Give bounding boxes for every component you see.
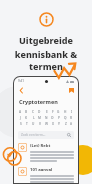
- staticText: F: [52, 110, 54, 114]
- staticText: K: [25, 116, 28, 120]
- staticText: G: [57, 110, 60, 114]
- staticText: X: [52, 122, 54, 126]
- button[interactable]: M: [37, 115, 42, 120]
- staticText: P: [58, 116, 60, 120]
- staticText: Cryptotermen: [19, 98, 58, 105]
- button[interactable]: #: [69, 121, 74, 126]
- button[interactable]: Q: [63, 115, 68, 120]
- button[interactable]: R: [69, 115, 74, 120]
- staticText: Z: [65, 122, 67, 126]
- button[interactable]: N: [44, 115, 49, 120]
- staticText: #: [70, 122, 73, 126]
- button[interactable]: X: [50, 121, 55, 126]
- button[interactable]: Back: [17, 86, 25, 94]
- staticText: M: [38, 116, 41, 120]
- staticText: J: [20, 116, 21, 120]
- staticText: Uitgebreide: [19, 34, 73, 46]
- staticText: S: [20, 122, 22, 126]
- button[interactable]: Bookmarks: [67, 86, 75, 94]
- staticText: kennisbank & termen: [0, 48, 92, 72]
- staticText: N: [45, 116, 48, 120]
- staticText: H: [64, 110, 67, 114]
- staticText: L: [33, 116, 35, 120]
- button[interactable]: P: [56, 115, 61, 120]
- staticText: D: [38, 110, 41, 114]
- staticText: W: [45, 122, 48, 126]
- button[interactable]: S: [18, 121, 23, 126]
- staticText: O: [51, 116, 54, 120]
- button[interactable]: W: [44, 121, 49, 126]
- button[interactable]: J: [18, 115, 23, 120]
- staticText: (Let) Rekt: [30, 143, 51, 149]
- button[interactable]: (Let) Rekt: [14, 143, 78, 163]
- staticText: B: [25, 110, 28, 114]
- staticText: V: [39, 122, 41, 126]
- staticText: U: [32, 122, 35, 126]
- button[interactable]: V: [37, 121, 42, 126]
- button[interactable]: I: [69, 109, 74, 114]
- button[interactable]: U: [31, 121, 36, 126]
- button[interactable]: K: [24, 115, 29, 120]
- staticText: A: [19, 110, 22, 114]
- button[interactable]: T: [24, 121, 29, 126]
- button[interactable]: C: [31, 109, 36, 114]
- button[interactable]: E: [44, 109, 49, 114]
- button[interactable]: Y: [56, 121, 61, 126]
- staticText: 101 aanval: [30, 167, 53, 173]
- button[interactable]: B: [24, 109, 29, 114]
- staticText: 9:41: [18, 79, 24, 83]
- staticText: T: [26, 122, 28, 126]
- staticText: I: [71, 110, 73, 114]
- staticText: Zoek een term...: [21, 133, 46, 137]
- button[interactable]: O: [50, 115, 55, 120]
- staticText: R: [70, 116, 73, 120]
- button[interactable]: H: [63, 109, 68, 114]
- button[interactable]: A: [18, 109, 23, 114]
- staticText: Y: [58, 122, 60, 126]
- button[interactable]: G: [56, 109, 61, 114]
- other: Information: [39, 12, 54, 27]
- button[interactable]: D: [37, 109, 42, 114]
- button[interactable]: F: [50, 109, 55, 114]
- button[interactable]: Z: [63, 121, 68, 126]
- button[interactable]: 101 aanval: [14, 167, 78, 183]
- staticText: C: [32, 110, 35, 114]
- button[interactable]: L: [31, 115, 36, 120]
- button[interactable]: Zoek een term...: [18, 131, 74, 139]
- staticText: E: [46, 110, 48, 114]
- staticText: Q: [64, 116, 67, 120]
